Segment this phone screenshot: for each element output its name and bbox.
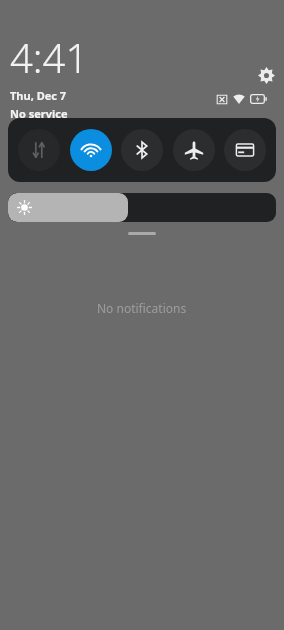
staticText: No notifications — [97, 300, 187, 316]
staticText: 4:41 — [10, 30, 89, 84]
button[interactable]: Bluetooth — [121, 129, 163, 171]
button[interactable]: Wi-Fi — [70, 129, 112, 171]
button[interactable]: Wallet — [224, 129, 266, 171]
button[interactable]: Mobile data — [18, 129, 60, 171]
button[interactable]: Settings — [252, 61, 280, 89]
staticText: No service — [10, 106, 68, 121]
button[interactable]: Brightness — [8, 193, 276, 222]
button[interactable]: Airplane mode — [173, 129, 215, 171]
staticText: Thu, Dec 7 — [10, 88, 67, 103]
